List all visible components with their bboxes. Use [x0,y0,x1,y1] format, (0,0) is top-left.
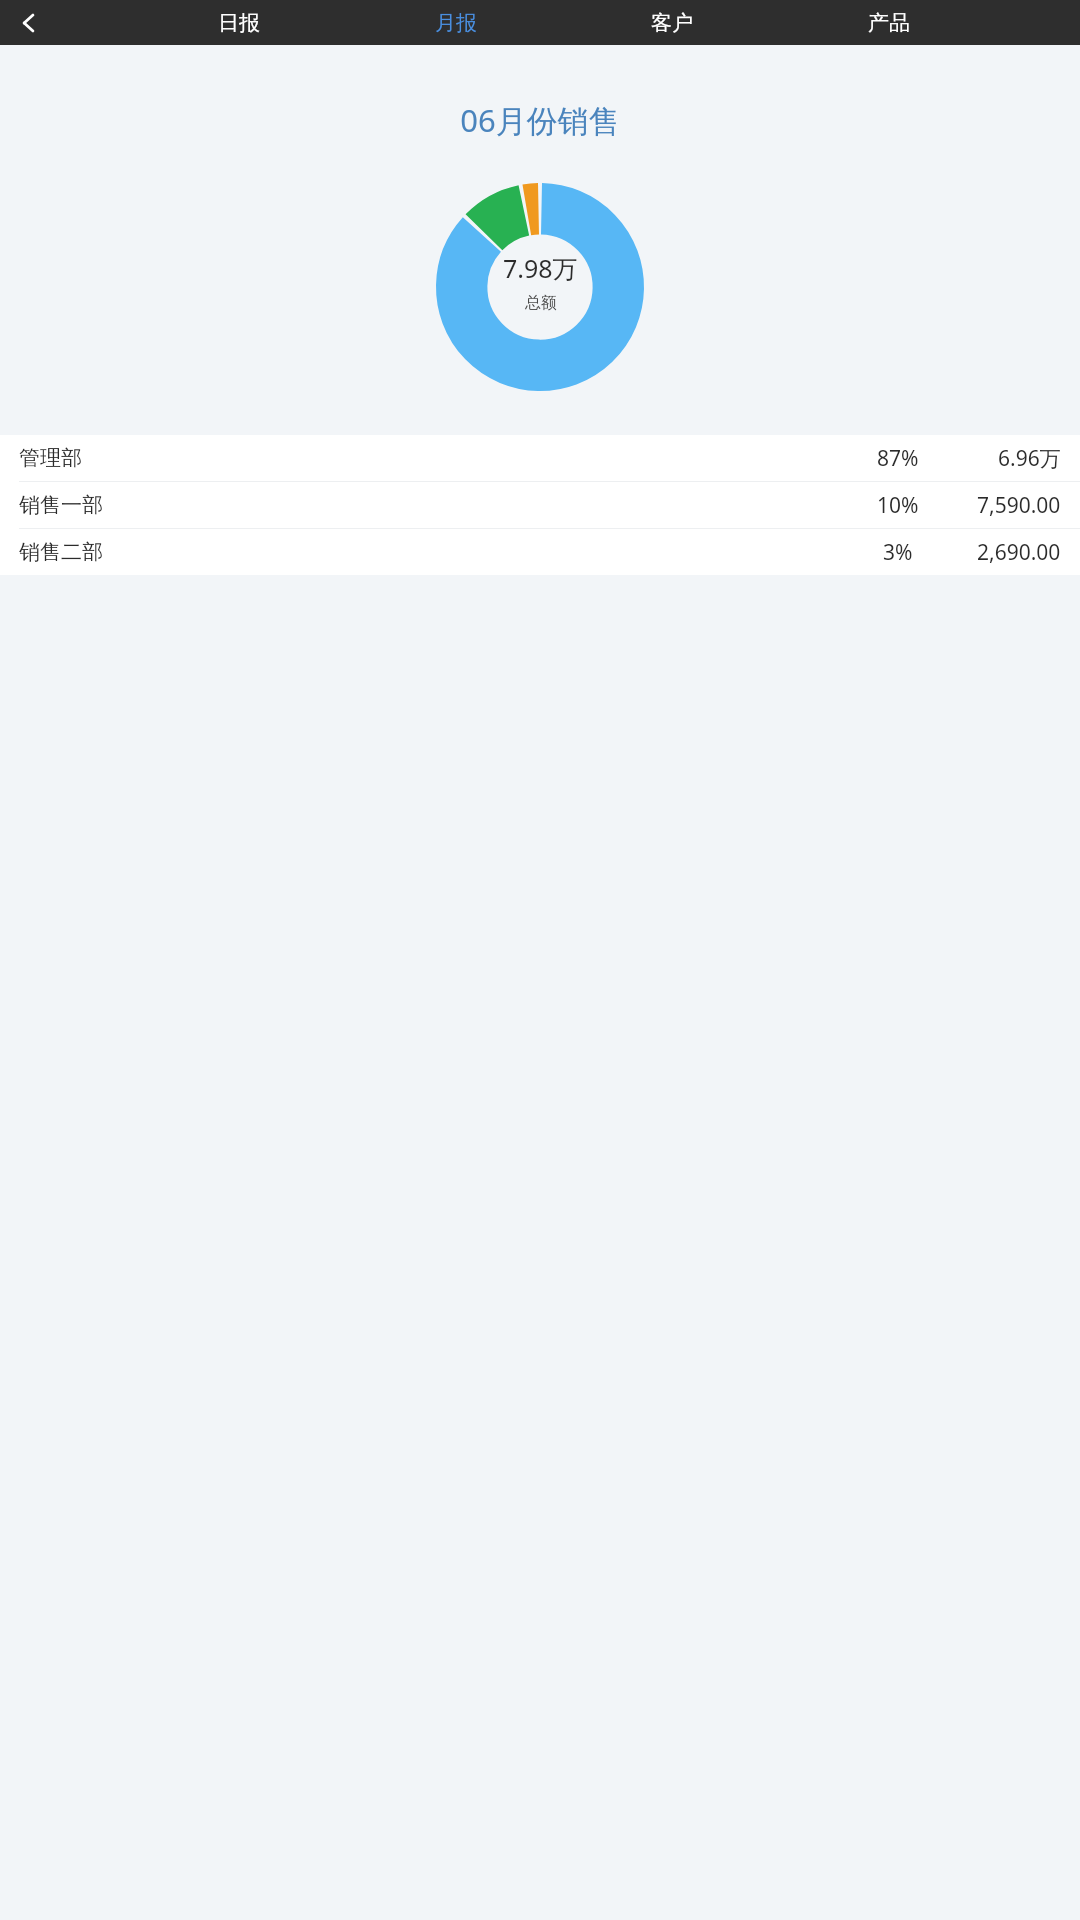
button[interactable]: 产品 [868,0,910,45]
staticText: 管理部 [19,445,82,471]
button[interactable]: Back [0,0,58,45]
staticText: 销售一部 [19,492,103,518]
staticText: 日报 [218,10,260,36]
button[interactable]: 销售二部 [0,529,1080,575]
staticText: 月报 [435,10,477,36]
staticText: 2,690.00 [977,538,1061,567]
button[interactable]: 管理部 [0,435,1080,482]
button[interactable]: 客户 [651,0,693,45]
staticText: 7.98万 [503,251,578,285]
button[interactable]: 销售一部 [0,482,1080,529]
staticText: 销售二部 [19,539,103,565]
staticText: 06月份销售 [0,99,1080,141]
staticText: 客户 [651,10,693,36]
staticText: 3% [883,538,913,567]
staticText: 10% [877,491,919,520]
staticText: 产品 [868,10,910,36]
staticText: 6.96万 [998,444,1061,473]
button[interactable]: 日报 [218,0,260,45]
staticText: 7,590.00 [977,491,1061,520]
staticText: 87% [877,444,919,473]
button[interactable]: 月报 [435,0,477,45]
staticText: 总额 [525,293,557,313]
